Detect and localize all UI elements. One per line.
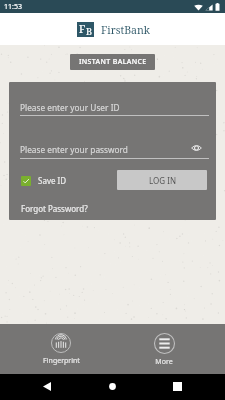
button[interactable]: Back bbox=[43, 382, 51, 391]
staticText: More bbox=[155, 357, 173, 367]
staticText: 11:53 bbox=[4, 2, 22, 12]
button[interactable]: Save ID bbox=[21, 175, 67, 186]
button[interactable]: Show password bbox=[190, 141, 203, 154]
staticText: Please enter your password bbox=[20, 144, 128, 155]
staticText: F bbox=[79, 22, 86, 36]
staticText: Please enter your User ID bbox=[20, 102, 120, 113]
button[interactable]: INSTANT BALANCE bbox=[70, 54, 155, 70]
button[interactable]: More bbox=[144, 333, 184, 367]
button[interactable]: Home bbox=[106, 380, 119, 393]
staticText: LOG IN bbox=[149, 175, 176, 186]
button[interactable]: Fingerprint bbox=[41, 333, 81, 366]
button[interactable]: LOG IN bbox=[117, 170, 207, 190]
staticText: Save ID bbox=[38, 175, 67, 186]
staticText: INSTANT BALANCE bbox=[79, 57, 147, 67]
staticText: Fingerprint bbox=[43, 356, 80, 366]
staticText: FirstBank bbox=[101, 23, 151, 37]
staticText: B bbox=[86, 25, 93, 38]
button[interactable]: Forgot Password? bbox=[21, 203, 88, 214]
